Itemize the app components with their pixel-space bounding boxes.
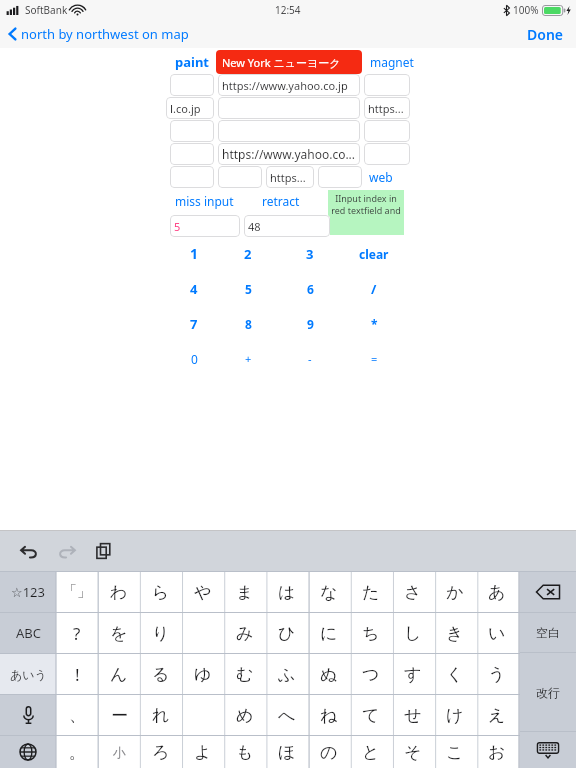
button[interactable]: 改行 bbox=[520, 653, 576, 731]
button[interactable]: north by northwest on map bbox=[8, 25, 189, 43]
button[interactable]: な bbox=[308, 572, 350, 612]
button[interactable]: 8 bbox=[220, 306, 276, 341]
button[interactable]: https... bbox=[266, 166, 314, 188]
button[interactable]: れ bbox=[140, 695, 182, 735]
button[interactable]: - bbox=[276, 341, 344, 376]
button[interactable] bbox=[170, 143, 214, 165]
button[interactable]: Voice input bbox=[0, 695, 56, 735]
button[interactable]: ち bbox=[350, 613, 392, 653]
button[interactable]: Redo bbox=[52, 536, 82, 566]
button[interactable]: ま bbox=[224, 572, 266, 612]
button[interactable]: 48 bbox=[244, 215, 330, 237]
button[interactable]: り bbox=[140, 613, 182, 653]
button[interactable]: ゆ bbox=[182, 654, 224, 694]
button[interactable]: 9 bbox=[276, 306, 344, 341]
button[interactable]: 1 bbox=[168, 236, 220, 271]
button[interactable]: ☆123 bbox=[0, 572, 56, 612]
button[interactable]: 空白 bbox=[520, 613, 576, 652]
button[interactable]: す bbox=[392, 654, 434, 694]
button[interactable]: https... bbox=[364, 97, 410, 119]
button[interactable]: ら bbox=[140, 572, 182, 612]
button[interactable]: ね bbox=[308, 695, 350, 735]
button[interactable]: / bbox=[344, 271, 404, 306]
button[interactable] bbox=[218, 97, 360, 119]
button[interactable]: し bbox=[392, 613, 434, 653]
button[interactable] bbox=[182, 695, 224, 735]
button[interactable]: ん bbox=[98, 654, 140, 694]
button[interactable]: さ bbox=[392, 572, 434, 612]
button[interactable]: Switch keyboard bbox=[0, 736, 56, 768]
button[interactable]: clear bbox=[344, 236, 404, 271]
button[interactable]: の bbox=[308, 736, 350, 768]
button[interactable]: 7 bbox=[168, 306, 220, 341]
button[interactable]: え bbox=[476, 695, 518, 735]
button[interactable]: い bbox=[476, 613, 518, 653]
button[interactable]: め bbox=[224, 695, 266, 735]
button[interactable] bbox=[218, 166, 262, 188]
button[interactable]: せ bbox=[392, 695, 434, 735]
button[interactable]: + bbox=[220, 341, 276, 376]
button[interactable]: や bbox=[182, 572, 224, 612]
button[interactable]: け bbox=[434, 695, 476, 735]
button[interactable]: 0 bbox=[168, 341, 220, 376]
button[interactable]: IInput index in red textfield and bbox=[328, 190, 404, 235]
button[interactable]: 6 bbox=[276, 271, 344, 306]
button[interactable]: は bbox=[266, 572, 308, 612]
button[interactable]: ろ bbox=[140, 736, 182, 768]
button[interactable]: Delete bbox=[520, 572, 576, 612]
button[interactable] bbox=[170, 120, 214, 142]
button[interactable]: magnet bbox=[366, 51, 418, 73]
button[interactable]: 3 bbox=[276, 236, 344, 271]
button[interactable]: く bbox=[434, 654, 476, 694]
button[interactable]: = bbox=[344, 341, 404, 376]
button[interactable]: ぬ bbox=[308, 654, 350, 694]
button[interactable]: https://www.yahoo.co.jp bbox=[218, 74, 360, 96]
button[interactable]: を bbox=[98, 613, 140, 653]
button[interactable]: つ bbox=[350, 654, 392, 694]
button[interactable] bbox=[218, 120, 360, 142]
button[interactable]: ほ bbox=[266, 736, 308, 768]
button[interactable]: retract bbox=[252, 190, 310, 212]
button[interactable]: 4 bbox=[168, 271, 220, 306]
button[interactable]: と bbox=[350, 736, 392, 768]
button[interactable]: る bbox=[140, 654, 182, 694]
button[interactable]: New York ニューヨーク bbox=[216, 50, 362, 74]
button[interactable] bbox=[182, 613, 224, 653]
button[interactable]: か bbox=[434, 572, 476, 612]
button[interactable]: む bbox=[224, 654, 266, 694]
button[interactable]: Hide keyboard bbox=[520, 732, 576, 768]
button[interactable]: こ bbox=[434, 736, 476, 768]
button[interactable]: ! bbox=[56, 654, 98, 694]
button[interactable]: ABC bbox=[0, 613, 56, 653]
button[interactable]: へ bbox=[266, 695, 308, 735]
button[interactable]: 。 bbox=[56, 736, 98, 768]
button[interactable]: そ bbox=[392, 736, 434, 768]
button[interactable]: paint bbox=[168, 51, 216, 73]
button[interactable] bbox=[170, 74, 214, 96]
button[interactable]: き bbox=[434, 613, 476, 653]
button[interactable]: み bbox=[224, 613, 266, 653]
button[interactable]: あいう bbox=[0, 654, 56, 694]
button[interactable]: * bbox=[344, 306, 404, 341]
button[interactable]: ひ bbox=[266, 613, 308, 653]
button[interactable]: web bbox=[364, 166, 398, 188]
button[interactable]: ا.co.jp bbox=[166, 97, 214, 119]
button[interactable]: に bbox=[308, 613, 350, 653]
button[interactable]: よ bbox=[182, 736, 224, 768]
button[interactable]: https://www.yahoo.co... bbox=[218, 143, 360, 165]
button[interactable]: 「」 bbox=[56, 572, 98, 612]
button[interactable]: 5 bbox=[220, 271, 276, 306]
button[interactable]: う bbox=[476, 654, 518, 694]
button[interactable]: 2 bbox=[220, 236, 276, 271]
button[interactable]: ふ bbox=[266, 654, 308, 694]
button[interactable]: ー bbox=[98, 695, 140, 735]
button[interactable] bbox=[364, 120, 410, 142]
button[interactable]: あ bbox=[476, 572, 518, 612]
button[interactable]: 、 bbox=[56, 695, 98, 735]
button[interactable]: 小 bbox=[98, 736, 140, 768]
button[interactable]: も bbox=[224, 736, 266, 768]
button[interactable]: miss input bbox=[170, 190, 238, 212]
button[interactable]: た bbox=[350, 572, 392, 612]
button[interactable]: て bbox=[350, 695, 392, 735]
button[interactable] bbox=[364, 74, 410, 96]
